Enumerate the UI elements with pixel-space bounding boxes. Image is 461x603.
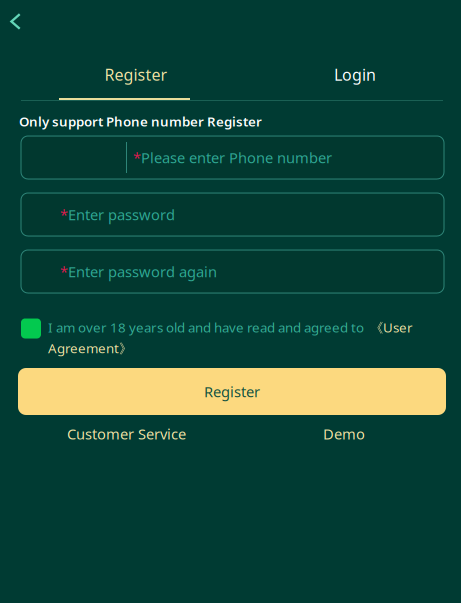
button[interactable]: Back bbox=[0, 0, 42, 40]
button[interactable]: Register bbox=[56, 64, 216, 112]
staticText: 《User bbox=[370, 318, 413, 336]
button[interactable]: I am over 18 years old and have read and… bbox=[21, 318, 446, 357]
staticText: Only support Phone number Register bbox=[19, 112, 262, 130]
staticText: Register bbox=[204, 382, 260, 401]
button[interactable]: Login bbox=[294, 64, 414, 98]
staticText: Login bbox=[334, 64, 376, 85]
staticText: * bbox=[133, 148, 141, 167]
staticText: I am over 18 years old and have read and… bbox=[48, 318, 370, 336]
staticText: Enter password again bbox=[68, 262, 217, 281]
staticText: Please enter Phone number bbox=[141, 148, 332, 167]
staticText: Agreement》 bbox=[48, 339, 132, 357]
button[interactable]: Customer Service bbox=[67, 424, 186, 443]
button[interactable]: Demo bbox=[323, 424, 365, 443]
staticText: * bbox=[60, 205, 68, 224]
staticText: Customer Service bbox=[67, 424, 186, 443]
staticText: Enter password bbox=[68, 205, 175, 224]
staticText: * bbox=[60, 262, 68, 281]
button[interactable]: Register bbox=[18, 368, 446, 415]
staticText: Register bbox=[104, 64, 167, 85]
staticText: Demo bbox=[323, 424, 365, 443]
